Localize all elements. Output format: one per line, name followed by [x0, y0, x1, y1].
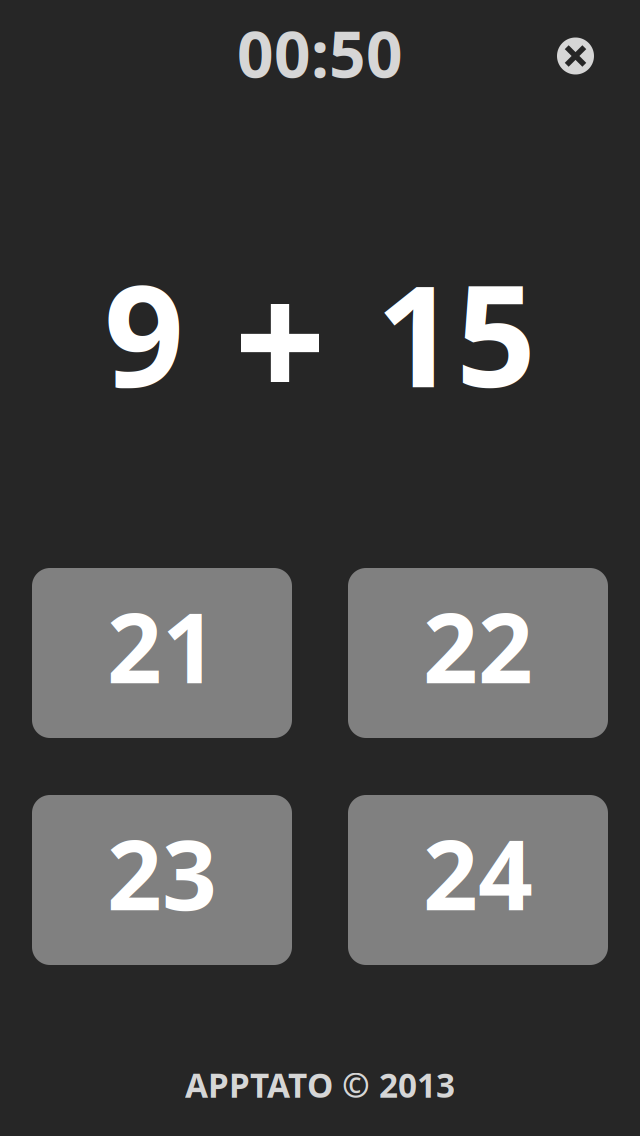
staticText: 00:50: [237, 10, 403, 95]
button[interactable]: Close: [557, 37, 594, 74]
staticText: 23: [107, 809, 217, 937]
staticText: 22: [423, 582, 533, 710]
button[interactable]: 22: [348, 568, 608, 738]
staticText: APPTATO © 2013: [185, 1063, 455, 1107]
button[interactable]: 24: [348, 795, 608, 965]
button[interactable]: 23: [32, 795, 292, 965]
staticText: 9: [104, 240, 184, 426]
staticText: 15: [376, 240, 536, 426]
staticText: 24: [423, 809, 533, 937]
staticText: 21: [107, 582, 217, 710]
button[interactable]: 21: [32, 568, 292, 738]
